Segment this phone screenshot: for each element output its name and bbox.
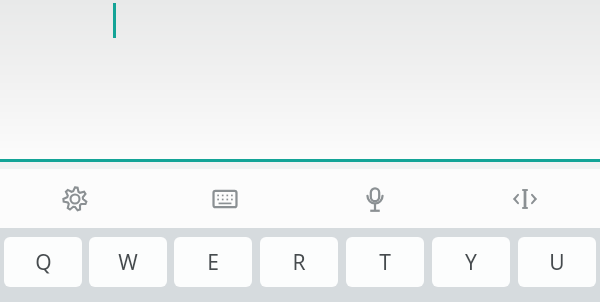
- button[interactable]: T: [346, 237, 424, 287]
- staticText: R: [292, 248, 306, 277]
- staticText: W: [118, 248, 138, 277]
- button[interactable]: Move cursor: [450, 169, 600, 228]
- button[interactable]: R: [260, 237, 338, 287]
- staticText: T: [379, 248, 391, 277]
- button[interactable]: E: [174, 237, 252, 287]
- button[interactable]: U: [518, 237, 596, 287]
- staticText: Y: [465, 248, 477, 277]
- staticText: Q: [35, 248, 52, 277]
- staticText: U: [549, 248, 565, 277]
- button[interactable]: Voice input: [300, 169, 450, 228]
- button[interactable]: Y: [432, 237, 510, 287]
- staticText: E: [207, 248, 219, 277]
- button[interactable]: Settings: [0, 169, 150, 228]
- button[interactable]: Keyboard layout: [150, 169, 300, 228]
- button[interactable]: W: [89, 237, 167, 287]
- button[interactable]: Q: [4, 237, 82, 287]
